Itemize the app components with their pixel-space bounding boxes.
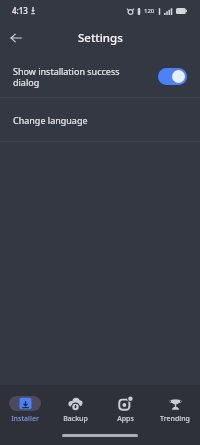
staticText: 4:13 [12,5,28,16]
staticText: Trending [160,414,190,424]
staticText: Installer [11,414,39,424]
button[interactable]: Show installation success dialog [0,56,200,97]
staticText: Change language [13,114,88,126]
button[interactable]: Trending [150,396,200,424]
button[interactable]: Apps [100,396,150,424]
button[interactable]: Change language [0,98,200,141]
button[interactable]: Back [1,23,31,53]
staticText: Apps [117,414,134,424]
staticText: 120 [144,7,155,15]
staticText: Show installation success dialog [13,65,129,89]
button[interactable]: Show installation success dialog [158,68,187,85]
staticText: Backup [63,414,88,424]
button[interactable]: Backup [50,396,100,424]
button[interactable]: Installer [0,396,50,424]
staticText: Settings [78,30,123,46]
